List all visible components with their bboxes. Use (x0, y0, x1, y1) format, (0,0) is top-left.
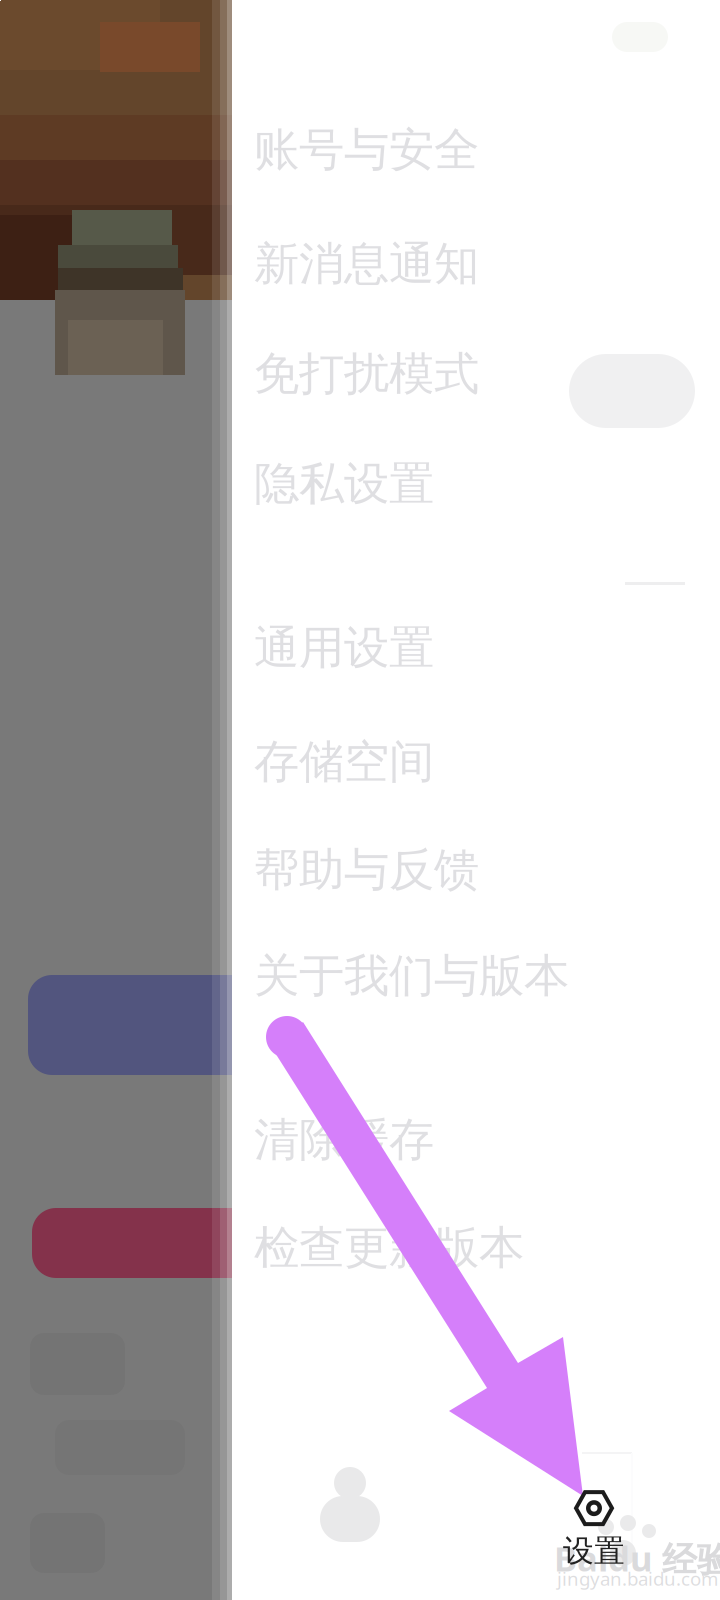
button[interactable]: 清除缓存 (232, 1088, 720, 1192)
button[interactable]: 通用设置 (232, 596, 720, 700)
button[interactable]: 账号与安全 (232, 98, 720, 202)
button[interactable]: Destructive action (32, 1208, 332, 1278)
button[interactable]: 新消息通知 (232, 212, 720, 316)
button[interactable]: 帮助与反馈 (232, 818, 720, 922)
staticText: jingyan.baidu.com (557, 1566, 718, 1591)
staticText: 帮助与反馈 (254, 842, 479, 898)
staticText: 隐私设置 (254, 456, 434, 512)
staticText: 关于我们与版本 (254, 948, 569, 1004)
staticText: 免打扰模式 (254, 346, 479, 402)
staticText: Baidu 经验 (554, 1535, 720, 1581)
staticText: 账号与安全 (254, 122, 479, 178)
button[interactable]: 检查更新版本 (232, 1196, 720, 1300)
staticText: 设置 (563, 1532, 625, 1570)
button[interactable]: Profile (302, 1448, 398, 1558)
staticText: 存储空间 (254, 734, 434, 790)
button[interactable]: 设置 (539, 1486, 649, 1574)
button[interactable]: Primary action (28, 975, 328, 1075)
button[interactable]: 存储空间 (232, 710, 720, 814)
staticText: 清除缓存 (254, 1112, 434, 1168)
staticText: 检查更新版本 (254, 1220, 524, 1276)
staticText: 通用设置 (254, 620, 434, 676)
button[interactable]: 关于我们与版本 (232, 924, 720, 1028)
staticText: 新消息通知 (254, 236, 479, 292)
button[interactable]: 隐私设置 (232, 432, 720, 536)
button[interactable]: 免打扰模式 (232, 322, 720, 426)
